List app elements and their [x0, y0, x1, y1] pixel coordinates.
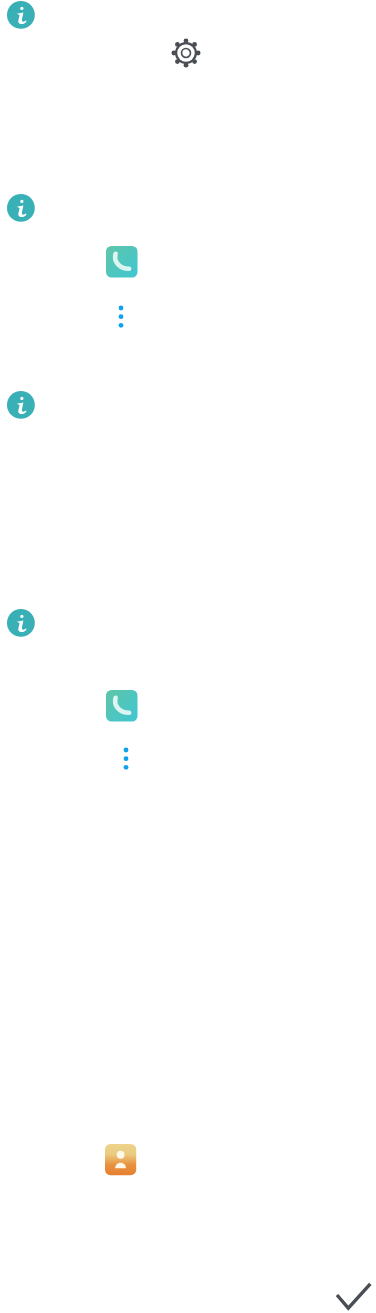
button[interactable]: Settings: [171, 38, 201, 68]
button[interactable]: More options: [118, 742, 134, 768]
button[interactable]: About: [7, 391, 35, 419]
button[interactable]: About: [7, 1, 35, 29]
button[interactable]: More options: [113, 300, 129, 326]
button[interactable]: About: [7, 609, 35, 637]
button[interactable]: Phone: [106, 690, 138, 722]
button[interactable]: About: [7, 194, 35, 222]
button[interactable]: Done: [333, 1280, 374, 1312]
button[interactable]: Contacts: [105, 1144, 136, 1175]
button[interactable]: Phone: [106, 246, 138, 278]
